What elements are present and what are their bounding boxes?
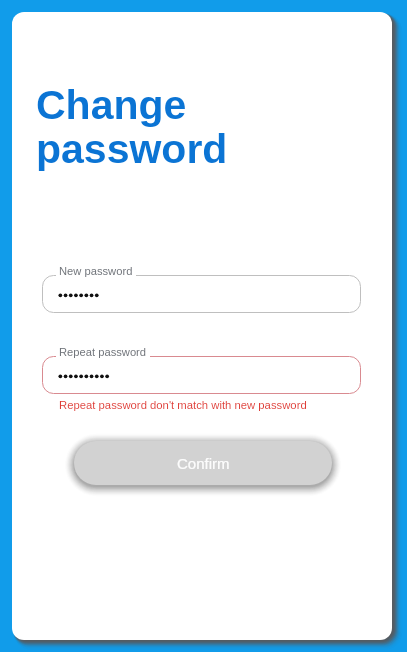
staticText: Confirm [177, 455, 230, 472]
staticText: New password [59, 265, 133, 278]
button[interactable]: New password [42, 275, 361, 313]
button[interactable]: Confirm [74, 441, 332, 485]
staticText: Change password [36, 82, 228, 172]
button[interactable]: Repeat password [42, 356, 361, 394]
staticText: Repeat password [59, 346, 147, 359]
staticText: Repeat password don't match with new pas… [59, 399, 307, 412]
